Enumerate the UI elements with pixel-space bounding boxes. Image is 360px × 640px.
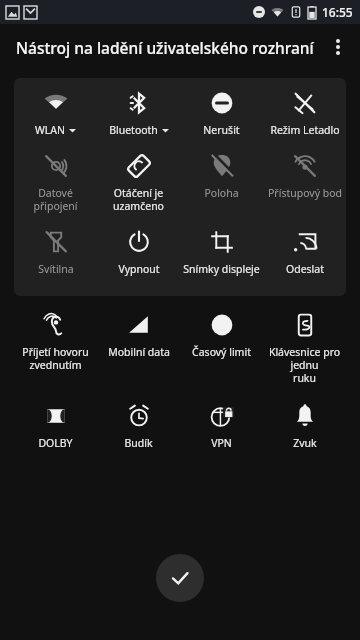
button[interactable]: Bluetooth xyxy=(99,90,178,137)
staticText: Otáčení je uzamčeno xyxy=(99,186,178,213)
staticText: Svítilna xyxy=(38,262,74,276)
staticText: Vypnout xyxy=(118,262,160,276)
staticText: WLAN xyxy=(35,123,65,137)
button[interactable]: Časový limit xyxy=(182,312,261,359)
staticText: 16:55 xyxy=(322,4,353,20)
button[interactable]: Klávesnice pro jednu ruku xyxy=(265,312,344,385)
button[interactable]: Odeslat xyxy=(265,229,344,276)
staticText: Časový limit xyxy=(192,345,251,359)
staticText: Nerušit xyxy=(203,123,240,137)
staticText: Nástroj na ladění uživatelského rozhraní… xyxy=(16,37,316,58)
button[interactable]: Nerušit xyxy=(182,90,261,137)
button[interactable]: Přístupový bod xyxy=(265,153,344,200)
button[interactable]: Poloha xyxy=(182,153,261,200)
button[interactable]: WLAN xyxy=(16,90,95,137)
staticText: Klávesnice pro jednu ruku xyxy=(265,345,344,385)
button[interactable]: Datové připojení xyxy=(16,153,95,213)
button[interactable]: Zvuk xyxy=(265,403,344,450)
button[interactable]: Vypnout xyxy=(99,229,178,276)
button[interactable]: Otáčení je uzamčeno xyxy=(99,153,178,213)
staticText: Odeslat xyxy=(286,262,324,276)
staticText: Datové připojení xyxy=(16,186,95,213)
button[interactable]: Done xyxy=(156,554,204,602)
button[interactable]: Příjetí hovoru zvednutím xyxy=(16,312,95,372)
button[interactable]: More options xyxy=(316,25,360,69)
staticText: Režim Letadlo xyxy=(270,123,340,137)
staticText: VPN xyxy=(211,436,232,450)
staticText: Poloha xyxy=(204,186,239,200)
staticText: DOLBY xyxy=(38,436,73,450)
staticText: Zvuk xyxy=(293,436,317,450)
button[interactable]: Snímky displeje xyxy=(182,229,261,276)
button[interactable]: Budík xyxy=(99,403,178,450)
button[interactable]: Svítilna xyxy=(16,229,95,276)
staticText: Přístupový bod xyxy=(268,186,342,200)
button[interactable]: DOLBY xyxy=(16,403,95,450)
staticText: Mobilní data xyxy=(108,345,170,359)
staticText: Bluetooth xyxy=(109,123,158,137)
button[interactable]: VPN xyxy=(182,403,261,450)
button[interactable]: Mobilní data xyxy=(99,312,178,359)
staticText: Budík xyxy=(124,436,153,450)
staticText: Příjetí hovoru zvednutím xyxy=(22,345,89,372)
button[interactable]: Režim Letadlo xyxy=(265,90,344,137)
staticText: Snímky displeje xyxy=(183,262,260,276)
